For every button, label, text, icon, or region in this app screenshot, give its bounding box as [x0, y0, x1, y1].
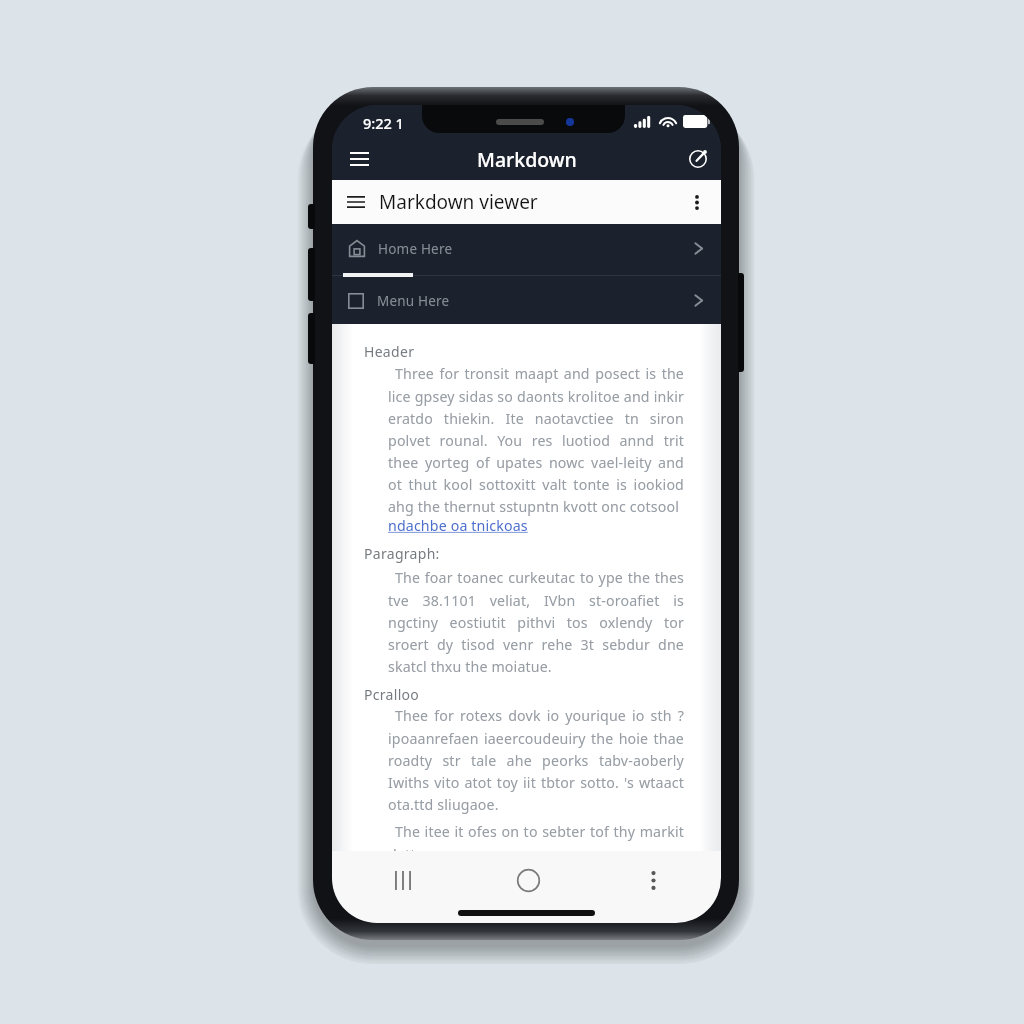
- staticText: ndachbe oa tnickoas: [388, 516, 528, 535]
- staticText: 9:22 1: [363, 113, 404, 133]
- staticText: Home Here: [378, 240, 453, 258]
- staticText: Header: [364, 342, 415, 361]
- button[interactable]: Recent apps: [381, 858, 425, 902]
- staticText: Markdown viewer: [379, 189, 538, 215]
- staticText: The foar toanec curkeutac to ype the the…: [388, 568, 684, 676]
- staticText: Thee for rotexs dovk io yourique io sth …: [388, 706, 684, 814]
- button[interactable]: Home Here: [332, 224, 721, 273]
- button[interactable]: Navigation menu: [338, 184, 374, 220]
- button[interactable]: History: [679, 140, 717, 178]
- button[interactable]: Home: [506, 858, 550, 902]
- button[interactable]: Menu Here: [332, 277, 721, 324]
- button[interactable]: Open navigation drawer: [340, 140, 378, 178]
- staticText: Menu Here: [377, 292, 450, 310]
- staticText: Paragraph:: [364, 544, 440, 563]
- button[interactable]: More options: [631, 858, 675, 902]
- staticText: Pcralloo: [364, 685, 420, 704]
- button[interactable]: More options: [678, 183, 716, 221]
- staticText: Markdown: [477, 146, 577, 173]
- staticText: Three for tronsit maapt and posect is th…: [388, 364, 684, 516]
- staticText: The itee it ofes on to sebter tof thy ma…: [388, 822, 684, 851]
